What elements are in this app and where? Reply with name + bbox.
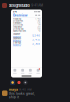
staticText: monthly <box>13 36 21 38</box>
button[interactable]: designstudio <box>0 0 70 8</box>
staticText: Housing <box>13 18 21 20</box>
staticText: 126 <box>37 22 40 24</box>
staticText: 168 <box>37 28 40 30</box>
staticText: Subscriptions <box>13 30 26 32</box>
staticText: designstudio <box>9 3 30 8</box>
staticText: monthly <box>13 40 21 42</box>
button[interactable]: Tab <box>26 67 34 74</box>
staticText: 2,472 <box>32 38 40 41</box>
staticText: 1,450 <box>35 18 40 20</box>
staticText: Income <box>13 33 20 36</box>
button[interactable]: Celebrate reaction <box>10 80 15 85</box>
button[interactable]: Add reaction <box>23 80 28 85</box>
staticText: Overview <box>13 13 28 17</box>
button[interactable]: Heart reaction <box>16 80 22 85</box>
button[interactable]: Tab <box>11 67 19 74</box>
staticText: 382 <box>37 20 40 22</box>
staticText: 9:45 AM <box>19 88 31 91</box>
staticText: Transport <box>13 22 22 24</box>
button[interactable]: maya <box>0 85 70 99</box>
staticText: 9:41 <box>13 10 17 13</box>
staticText: 42 <box>38 30 40 32</box>
staticText: this looks great, ship it <box>9 92 35 99</box>
staticText: Insurance <box>13 26 22 28</box>
staticText: maya <box>9 87 18 91</box>
staticText: Utilities <box>13 24 23 26</box>
button[interactable]: Tab <box>34 67 42 74</box>
staticText: Dining out <box>13 28 24 30</box>
staticText: monthly <box>13 44 21 47</box>
button[interactable]: Tab <box>19 67 27 74</box>
staticText: 94 <box>38 24 40 26</box>
button[interactable]: Attached screenshot <box>0 8 42 77</box>
staticText: 9:41 AM <box>31 4 43 7</box>
staticText: 5,240 <box>32 34 40 37</box>
staticText: 210 <box>37 26 40 28</box>
staticText: Expenses <box>13 37 21 40</box>
staticText: 2,768 <box>32 42 40 45</box>
staticText: Savings <box>13 41 21 44</box>
staticText: Groceries <box>13 20 23 22</box>
